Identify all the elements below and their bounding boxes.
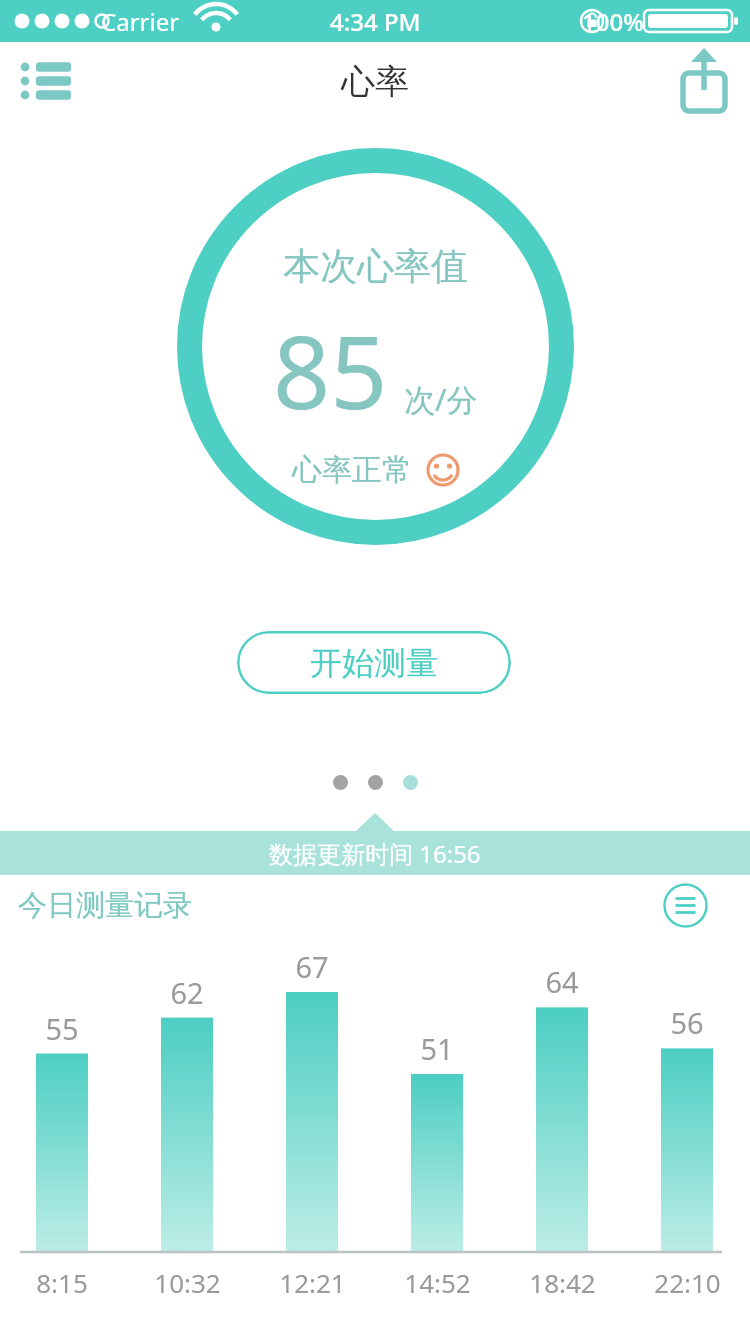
staticText: Carrier xyxy=(101,5,180,38)
staticText: 数据更新时间 16:56 xyxy=(269,837,481,870)
staticText: 67 xyxy=(295,947,329,986)
staticText: 心率正常 xyxy=(292,451,412,489)
staticText: 心率 xyxy=(341,60,409,103)
button[interactable]: Share xyxy=(674,50,734,112)
staticText: 85 xyxy=(273,302,388,438)
staticText: 12:21 xyxy=(279,1265,346,1300)
staticText: 51 xyxy=(420,1029,454,1068)
staticText: 8:15 xyxy=(36,1265,88,1300)
button[interactable] xyxy=(333,775,348,790)
staticText: 今日测量记录 xyxy=(18,887,192,924)
staticText: 10:32 xyxy=(154,1265,221,1300)
staticText: 62 xyxy=(170,973,204,1012)
button[interactable]: Chart options xyxy=(663,883,708,928)
button[interactable]: 开始测量 xyxy=(237,631,511,694)
button[interactable]: Menu xyxy=(10,51,86,111)
staticText: 64 xyxy=(545,962,579,1001)
staticText: 100% xyxy=(582,5,644,38)
staticText: 本次心率值 xyxy=(283,243,468,290)
staticText: 55 xyxy=(45,1009,79,1048)
staticText: 次/分 xyxy=(404,378,478,420)
staticText: 14:52 xyxy=(404,1265,471,1300)
button[interactable] xyxy=(368,775,383,790)
staticText: 开始测量 xyxy=(310,643,438,683)
button[interactable] xyxy=(403,775,418,790)
staticText: 18:42 xyxy=(529,1265,596,1300)
staticText: 22:10 xyxy=(654,1265,721,1300)
staticText: 56 xyxy=(670,1003,704,1042)
staticText: 4:34 PM xyxy=(330,5,421,38)
